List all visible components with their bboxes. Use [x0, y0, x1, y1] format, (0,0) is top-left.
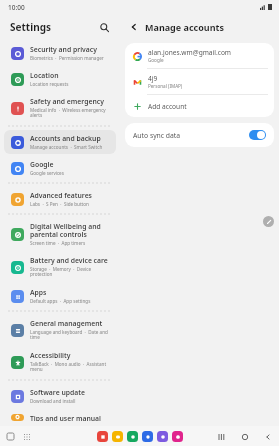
button[interactable]: Recents: [216, 431, 227, 442]
button[interactable]: Edit: [263, 216, 274, 227]
staticText: Add account: [148, 102, 187, 111]
staticText: Google services: [30, 170, 64, 176]
button[interactable]: Apps: [4, 284, 116, 308]
staticText: Screen time · App timers: [30, 240, 86, 246]
staticText: Battery and device care: [30, 256, 108, 265]
button[interactable]: App 2: [127, 431, 138, 442]
staticText: Default apps · App settings: [30, 298, 91, 304]
button[interactable]: App 5: [172, 431, 183, 442]
button[interactable]: Google: [4, 156, 116, 180]
staticText: Language and keyboard · Date and time: [30, 329, 110, 341]
button[interactable]: App 4: [157, 431, 168, 442]
button[interactable]: General management: [4, 315, 116, 345]
button[interactable]: Battery and device care: [4, 252, 116, 282]
staticText: alan.jones.wm@gmail.com: [148, 48, 232, 57]
staticText: Tips and user manual: [30, 414, 101, 421]
staticText: Storage · Memory · Device protection: [30, 266, 110, 278]
button[interactable]: All apps: [21, 431, 32, 442]
button[interactable]: Location: [4, 67, 116, 91]
staticText: Location requests: [30, 81, 69, 87]
button[interactable]: Tips and user manual: [4, 410, 116, 425]
button[interactable]: Advanced features: [4, 187, 116, 211]
staticText: Medical info · Wireless emergency alerts: [30, 107, 110, 119]
staticText: Labs · S Pen · Side button: [30, 201, 89, 207]
button[interactable]: Home: [239, 431, 250, 442]
button[interactable]: Recent apps: [5, 431, 16, 442]
staticText: Security and privacy: [30, 45, 97, 54]
staticText: Digital Wellbeing and parental controls: [30, 222, 110, 239]
button[interactable]: 4j9: [125, 69, 274, 94]
button[interactable]: Search: [96, 19, 112, 35]
button[interactable]: alan.jones.wm@gmail.com: [125, 43, 274, 68]
staticText: Apps: [30, 288, 47, 297]
staticText: General management: [30, 319, 103, 328]
staticText: Accounts and backup: [30, 134, 101, 143]
staticText: Manage accounts: [145, 21, 224, 33]
staticText: Location: [30, 71, 59, 80]
button[interactable]: Security and privacy: [4, 41, 116, 65]
staticText: 4j9: [148, 74, 158, 83]
staticText: Manage accounts · Smart Switch: [30, 144, 103, 150]
staticText: Accessibility: [30, 351, 71, 360]
staticText: 10:00: [8, 3, 25, 12]
button[interactable]: App 0: [97, 431, 108, 442]
staticText: Google: [148, 57, 164, 63]
button[interactable]: Accessibility: [4, 347, 116, 377]
button[interactable]: Accounts and backup: [4, 130, 116, 154]
button[interactable]: Software update: [4, 384, 116, 408]
staticText: Personal (IMAP): [148, 83, 183, 89]
staticText: Auto sync data: [133, 131, 181, 140]
button[interactable]: Add account: [125, 95, 274, 117]
button[interactable]: Back: [126, 19, 142, 35]
staticText: Software update: [30, 388, 85, 397]
staticText: Safety and emergency: [30, 97, 104, 106]
button[interactable]: Auto sync data: [125, 123, 274, 147]
button[interactable]: App 3: [142, 431, 153, 442]
button[interactable]: App 1: [112, 431, 123, 442]
staticText: Google: [30, 160, 54, 169]
staticText: Advanced features: [30, 191, 92, 200]
button[interactable]: Back: [262, 431, 273, 442]
staticText: Settings: [10, 20, 51, 34]
staticText: Download and install: [30, 398, 76, 404]
staticText: TalkBack · Mono audio · Assistant menu: [30, 361, 110, 373]
staticText: Biometrics · Permission manager: [30, 55, 104, 61]
button[interactable]: Digital Wellbeing and parental controls: [4, 218, 116, 250]
button[interactable]: Safety and emergency: [4, 93, 116, 123]
